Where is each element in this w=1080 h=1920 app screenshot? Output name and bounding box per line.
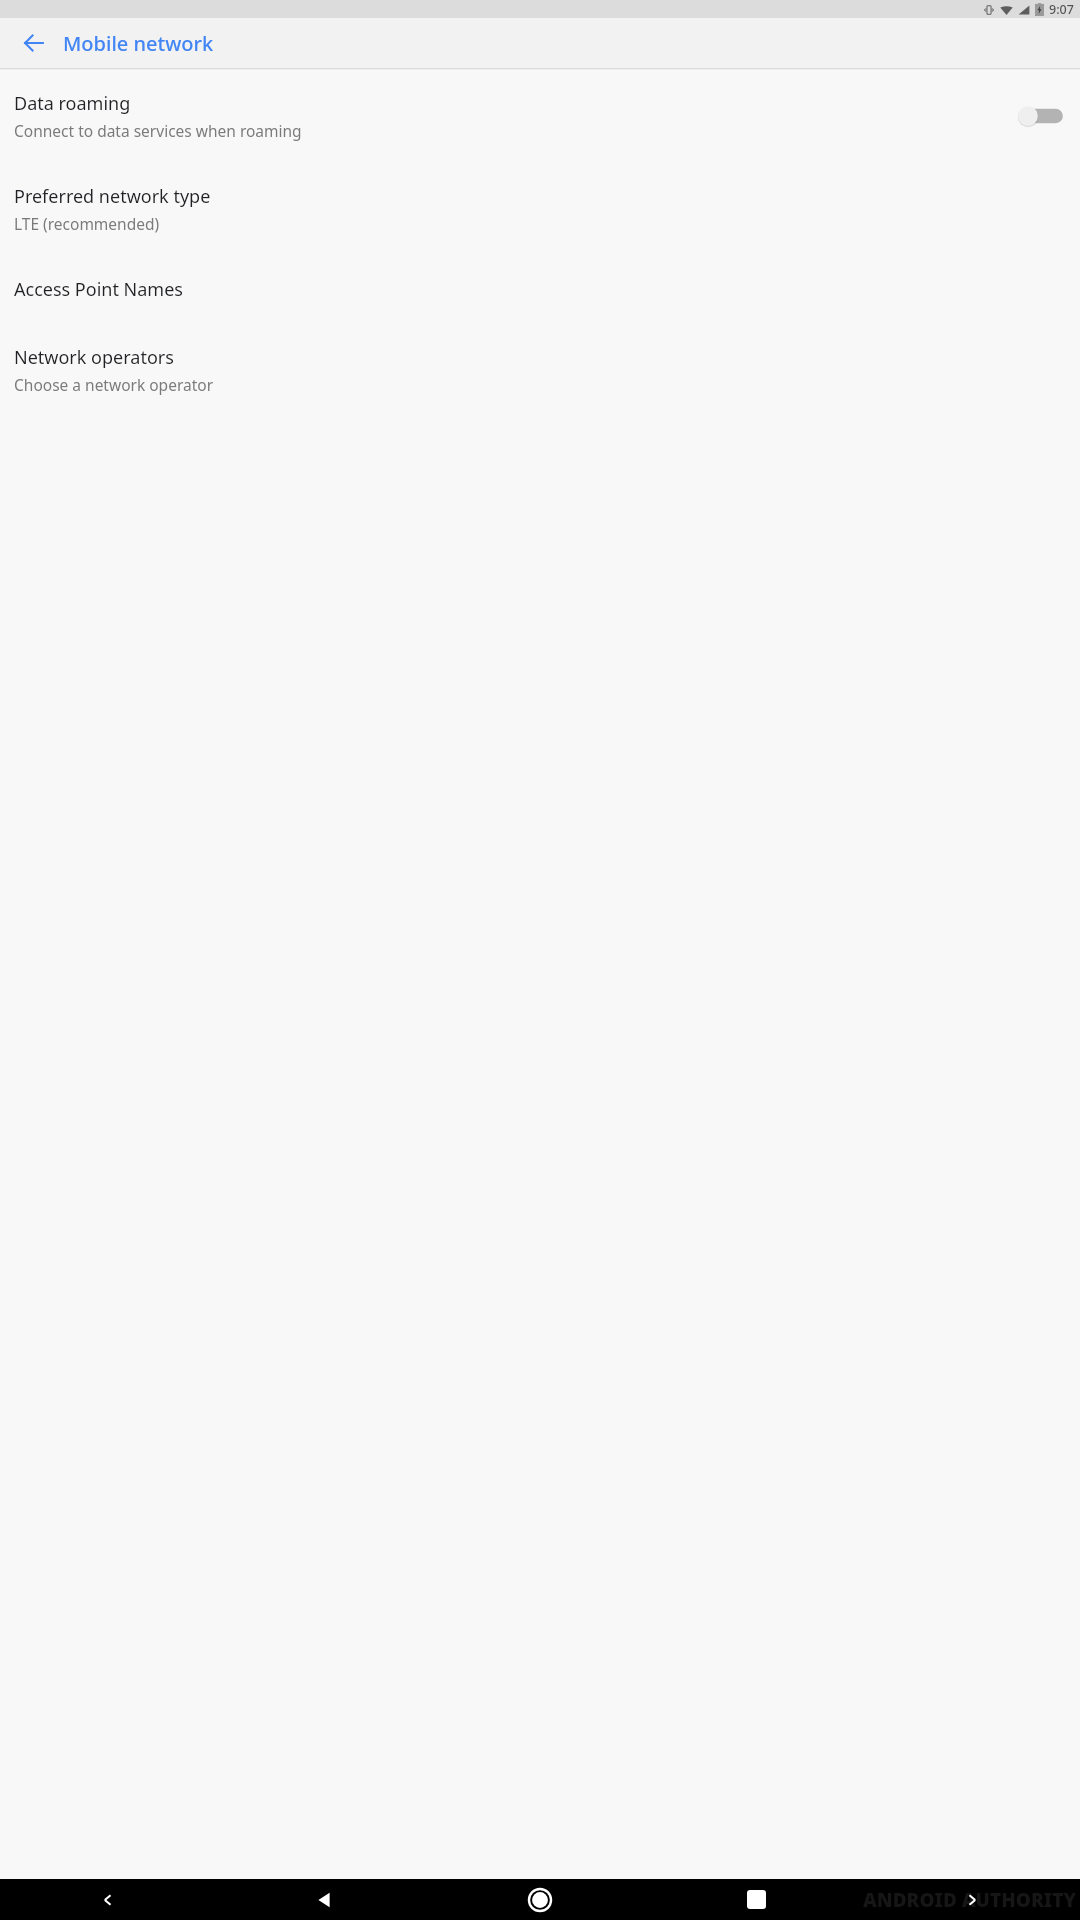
staticText: Preferred network type [14,184,211,209]
button[interactable]: Back [216,1879,432,1920]
staticText: Choose a network operator [14,374,214,395]
button[interactable]: Data roaming toggle [1014,99,1066,133]
staticText: Mobile network [63,30,214,57]
button[interactable]: Recents [648,1879,864,1920]
staticText: Data roaming [14,91,131,116]
button[interactable]: Next [864,1879,1080,1920]
staticText: Network operators [14,345,174,370]
staticText: Access Point Names [14,277,183,302]
staticText: ANDROID AUTHORITY [862,1887,1076,1913]
button[interactable]: Previous [0,1879,216,1920]
button[interactable]: Network operators [0,345,1080,395]
staticText: 9:07 [1049,1,1074,18]
button[interactable]: Home [432,1879,648,1920]
button[interactable]: Back [10,19,58,67]
button[interactable]: Preferred network type [0,184,1080,234]
button[interactable]: Access Point Names [0,277,1080,302]
button[interactable]: Data roaming [0,91,1080,141]
staticText: LTE (recommended) [14,213,160,234]
staticText: Connect to data services when roaming [14,120,302,141]
